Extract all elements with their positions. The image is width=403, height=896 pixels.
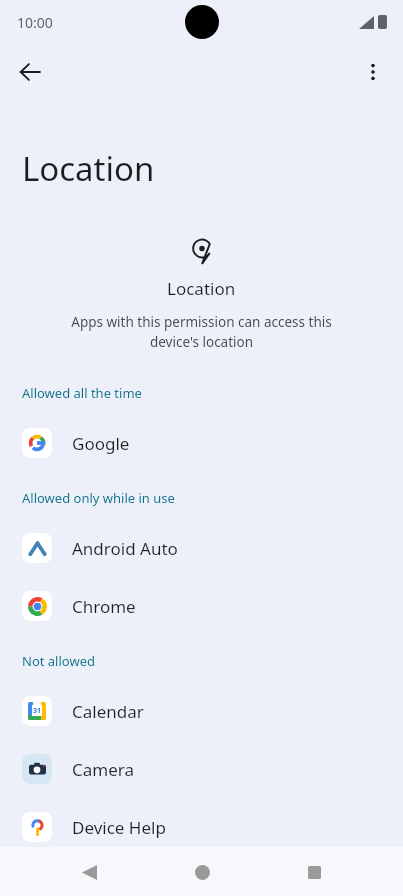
button[interactable]: Device Help [0, 798, 403, 856]
button[interactable]: Home [178, 848, 226, 896]
staticText: Device Help [72, 816, 166, 839]
staticText: Camera [72, 758, 134, 781]
staticText: Location [22, 146, 155, 191]
staticText: Allowed only while in use [22, 489, 175, 507]
button[interactable]: More options [351, 50, 395, 94]
staticText: Android Auto [72, 537, 178, 560]
staticText: Apps with this permission can access thi… [60, 313, 343, 351]
button[interactable]: Camera [0, 740, 403, 798]
button[interactable]: Back [65, 848, 113, 896]
button[interactable]: Android Auto [0, 519, 403, 577]
staticText: 10:00 [17, 13, 53, 32]
staticText: Calendar [72, 700, 144, 723]
button[interactable]: Back [8, 50, 52, 94]
button[interactable]: 31 [0, 682, 403, 740]
staticText: 31 [33, 706, 42, 716]
staticText: Allowed all the time [22, 384, 142, 402]
staticText: Chrome [72, 595, 136, 618]
button[interactable]: Chrome [0, 577, 403, 635]
staticText: Google [72, 432, 130, 455]
staticText: Not allowed [22, 652, 95, 670]
button[interactable]: Google [0, 414, 403, 472]
staticText: Location [167, 277, 236, 300]
button[interactable]: Recent apps [290, 848, 338, 896]
